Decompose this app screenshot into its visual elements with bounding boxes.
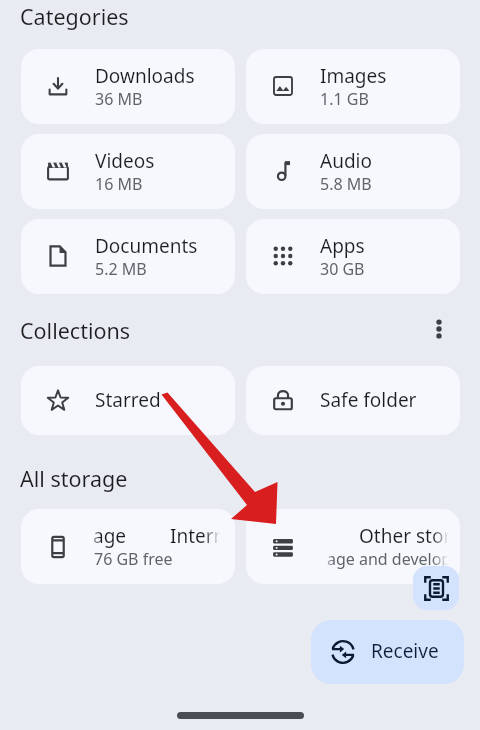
staticText: age and developer files <box>327 548 460 570</box>
staticText: 1.1 GB <box>320 88 369 110</box>
staticText: Videos <box>95 148 155 174</box>
staticText: 5.2 MB <box>95 258 147 280</box>
staticText: 76 GB free <box>94 548 173 570</box>
staticText: Audio <box>320 148 372 174</box>
staticText: Internal storage <box>170 523 235 549</box>
button[interactable]: Images <box>246 49 460 124</box>
staticText: Categories <box>20 2 129 31</box>
staticText: 30 GB <box>320 258 365 280</box>
staticText: Other storage <box>359 523 460 549</box>
button[interactable]: Videos <box>21 134 235 209</box>
staticText: Documents <box>95 233 198 259</box>
button[interactable]: Other storage <box>246 509 460 584</box>
button[interactable]: Safe folder <box>246 366 460 435</box>
button[interactable]: Scan document <box>413 566 459 610</box>
button[interactable]: Downloads <box>21 49 235 124</box>
button[interactable]: Apps <box>246 219 460 294</box>
staticText: Downloads <box>95 63 195 89</box>
staticText: 5.8 MB <box>320 173 372 195</box>
button[interactable]: Receive <box>311 620 464 684</box>
staticText: Safe folder <box>320 387 417 413</box>
button[interactable]: More options <box>421 311 457 347</box>
staticText: 16 MB <box>95 173 143 195</box>
button[interactable]: Audio <box>246 134 460 209</box>
button[interactable]: age <box>21 509 235 584</box>
staticText: Receive <box>371 638 439 664</box>
staticText: Collections <box>20 316 131 345</box>
staticText: age <box>93 523 127 549</box>
staticText: Apps <box>320 233 365 259</box>
button[interactable]: Documents <box>21 219 235 294</box>
staticText: All storage <box>20 464 128 493</box>
staticText: 36 MB <box>95 88 143 110</box>
staticText: Images <box>320 63 387 89</box>
button[interactable]: Starred <box>21 366 235 435</box>
staticText: Starred <box>95 387 161 413</box>
